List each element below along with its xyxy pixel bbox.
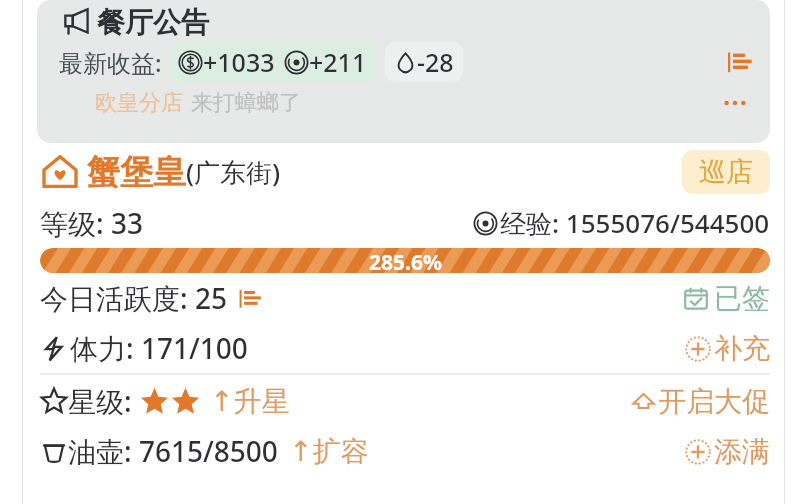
button[interactable]: 开启大促 <box>630 384 770 419</box>
button[interactable]: 餐厅公告 <box>37 0 770 143</box>
staticText: 等级: 33 <box>40 204 143 242</box>
staticText: ↑扩容 <box>289 434 369 469</box>
button[interactable]: -28 <box>385 42 463 82</box>
staticText: 补充 <box>714 331 770 366</box>
staticText: 开启大促 <box>658 384 770 419</box>
staticText: 285.6% <box>369 248 442 273</box>
staticText: 来打蟑螂了 <box>191 89 301 117</box>
staticText: ↑升星 <box>210 384 290 419</box>
staticText: 油壶: 7615/8500 <box>68 432 278 470</box>
button[interactable]: 巡店 <box>682 150 770 194</box>
staticText: 今日活跃度: 25 <box>40 279 227 317</box>
button[interactable]: 活跃度排行 <box>236 285 263 312</box>
staticText: 最新收益: <box>59 46 162 79</box>
button[interactable]: +1033 <box>169 42 376 82</box>
staticText: 蟹堡皇 <box>87 151 186 193</box>
button[interactable]: 更多 <box>720 88 750 118</box>
staticText: (广东街) <box>186 154 281 190</box>
staticText: 经验: 1555076/544500 <box>500 205 770 241</box>
button[interactable]: 285.6% <box>40 248 770 273</box>
staticText: 体力: 171/100 <box>70 329 248 367</box>
button[interactable]: ↑扩容 <box>289 434 369 469</box>
staticText: 欧皇分店 <box>95 89 183 117</box>
staticText: 已签 <box>714 281 770 316</box>
staticText: 添满 <box>714 434 770 469</box>
staticText: 星级: <box>68 382 132 420</box>
staticText: +211 <box>309 45 367 79</box>
staticText: 巡店 <box>699 155 753 189</box>
button[interactable]: 补充 <box>684 331 770 366</box>
staticText: 餐厅公告 <box>97 5 209 40</box>
button[interactable]: 排行榜 <box>724 47 754 77</box>
button[interactable]: 已签 <box>681 281 770 316</box>
button[interactable]: 添满 <box>684 434 770 469</box>
staticText: -28 <box>417 45 454 79</box>
staticText: +1033 <box>203 45 275 79</box>
button[interactable]: ↑升星 <box>210 384 290 419</box>
